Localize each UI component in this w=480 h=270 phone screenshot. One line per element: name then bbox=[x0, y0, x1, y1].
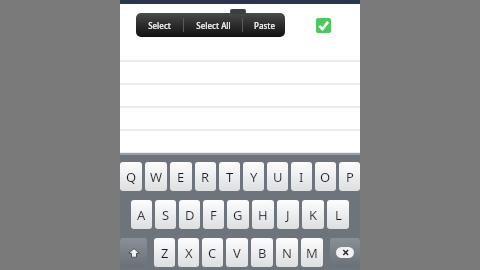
staticText: Q bbox=[126, 168, 137, 186]
staticText: X bbox=[185, 244, 193, 262]
staticText: B bbox=[258, 244, 267, 262]
staticText: V bbox=[233, 244, 241, 262]
button[interactable]: Z bbox=[154, 238, 175, 267]
staticText: S bbox=[162, 206, 170, 224]
button[interactable]: Shift bbox=[120, 238, 147, 267]
staticText: Y bbox=[250, 168, 258, 186]
button[interactable]: K bbox=[302, 200, 324, 229]
button[interactable]: X bbox=[178, 238, 199, 267]
staticText: Paste bbox=[254, 20, 275, 31]
staticText: N bbox=[282, 244, 292, 262]
staticText: J bbox=[286, 206, 290, 224]
button[interactable]: R bbox=[195, 162, 216, 191]
button[interactable]: C bbox=[202, 238, 223, 267]
button[interactable]: W bbox=[145, 162, 167, 191]
staticText: T bbox=[226, 168, 234, 186]
button[interactable]: M bbox=[301, 238, 323, 267]
staticText: L bbox=[335, 206, 342, 224]
staticText: Z bbox=[161, 244, 169, 262]
button[interactable]: O bbox=[315, 162, 336, 191]
button[interactable]: P bbox=[339, 162, 360, 191]
button[interactable]: H bbox=[252, 200, 274, 229]
button[interactable]: J bbox=[277, 200, 299, 229]
button[interactable]: I bbox=[291, 162, 312, 191]
staticText: M bbox=[306, 244, 318, 262]
button[interactable]: U bbox=[267, 162, 288, 191]
button[interactable]: V bbox=[226, 238, 248, 267]
staticText: D bbox=[185, 206, 195, 224]
button[interactable]: Select All bbox=[184, 13, 242, 37]
staticText: I bbox=[299, 168, 304, 186]
staticText: A bbox=[137, 206, 146, 224]
button[interactable]: G bbox=[227, 200, 249, 229]
button[interactable]: Select bbox=[136, 13, 183, 37]
button[interactable]: A bbox=[131, 200, 152, 229]
staticText: P bbox=[346, 168, 354, 186]
button[interactable]: T bbox=[219, 162, 240, 191]
staticText: K bbox=[309, 206, 318, 224]
staticText: O bbox=[320, 168, 331, 186]
button[interactable]: D bbox=[179, 200, 200, 229]
staticText: E bbox=[177, 168, 185, 186]
button[interactable]: F bbox=[203, 200, 224, 229]
staticText: U bbox=[273, 168, 283, 186]
button[interactable]: Q bbox=[120, 162, 142, 191]
button[interactable]: Backspace bbox=[330, 238, 360, 267]
staticText: Select All bbox=[196, 20, 231, 31]
staticText: C bbox=[208, 244, 217, 262]
staticText: Select bbox=[148, 20, 171, 31]
staticText: G bbox=[233, 206, 243, 224]
staticText: R bbox=[201, 168, 210, 186]
button[interactable]: B bbox=[251, 238, 273, 267]
button[interactable]: N bbox=[276, 238, 298, 267]
button[interactable]: S bbox=[155, 200, 176, 229]
staticText: H bbox=[258, 206, 268, 224]
button[interactable]: L bbox=[327, 200, 349, 229]
button[interactable]: Y bbox=[243, 162, 264, 191]
button[interactable]: Done bbox=[316, 18, 331, 33]
button[interactable]: E bbox=[170, 162, 192, 191]
staticText: F bbox=[210, 206, 217, 224]
staticText: W bbox=[150, 168, 163, 186]
button[interactable]: Paste bbox=[243, 13, 285, 37]
